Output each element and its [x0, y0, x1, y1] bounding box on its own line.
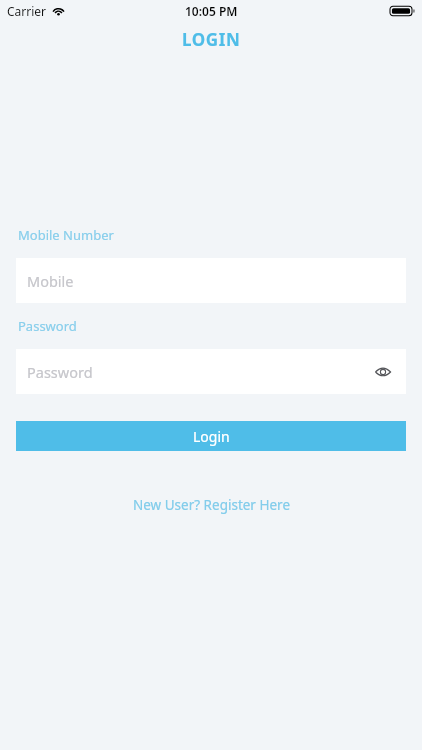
staticText: New User? Register Here [133, 496, 290, 514]
button[interactable]: Password [16, 349, 406, 394]
staticText: 10:05 PM [185, 3, 238, 19]
staticText: Password [18, 317, 77, 335]
staticText: Login [193, 427, 230, 446]
button[interactable]: Show password [368, 357, 398, 387]
button[interactable]: Mobile [16, 258, 406, 303]
staticText: LOGIN [182, 28, 241, 51]
staticText: Password [27, 362, 93, 382]
button[interactable]: Login [16, 421, 406, 451]
button[interactable]: New User? Register Here [121, 491, 302, 519]
staticText: Mobile Number [18, 226, 114, 244]
staticText: Carrier [7, 3, 47, 19]
staticText: Mobile [27, 271, 74, 291]
